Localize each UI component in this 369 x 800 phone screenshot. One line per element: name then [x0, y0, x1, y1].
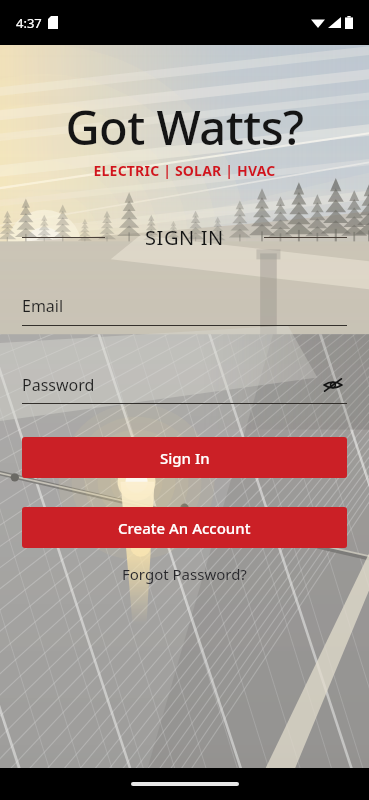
staticText: Sign In [160, 448, 210, 468]
button[interactable]: Email [22, 295, 347, 326]
button[interactable]: Forgot Password? [110, 560, 259, 588]
button[interactable]: Show password [319, 371, 347, 399]
staticText: Got Watts? [0, 95, 369, 159]
staticText: Password [22, 374, 95, 396]
staticText: Email [22, 295, 64, 317]
button[interactable]: Create An Account [22, 507, 347, 548]
staticText: SIGN IN [145, 224, 224, 251]
button[interactable]: Password [22, 371, 347, 404]
staticText: ELECTRIC | SOLAR | HVAC [0, 161, 369, 180]
staticText: 4:37 [16, 14, 42, 32]
staticText: Create An Account [118, 518, 251, 538]
button[interactable]: Sign In [22, 437, 347, 478]
